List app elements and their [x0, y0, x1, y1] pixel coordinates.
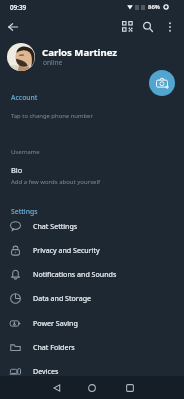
button[interactable]: Data and Storage	[0, 286, 184, 310]
button[interactable]: QR code	[117, 16, 138, 37]
button[interactable]: Carlos Martinez	[0, 40, 184, 74]
button[interactable]: Home	[83, 379, 101, 397]
staticText: 86%	[148, 3, 160, 11]
staticText: Settings	[11, 207, 38, 216]
button[interactable]: Back	[48, 379, 66, 397]
staticText: Username	[11, 148, 40, 156]
staticText: Power Saving	[33, 318, 78, 328]
staticText: Privacy and Security	[33, 245, 100, 255]
staticText: 09:39	[10, 3, 27, 12]
button[interactable]: Chat Settings	[0, 214, 184, 238]
staticText: Devices	[33, 366, 59, 376]
button[interactable]: Recent apps	[121, 379, 139, 397]
staticText: Tap to change phone number	[11, 112, 93, 120]
button[interactable]: Bio	[0, 165, 184, 189]
button[interactable]: Chat Folders	[0, 335, 184, 359]
staticText: Carlos Martinez	[42, 46, 118, 59]
staticText: Add a few words about yourself	[11, 178, 100, 186]
button[interactable]: Set profile photo	[149, 70, 175, 96]
button[interactable]: Back	[2, 16, 23, 37]
button[interactable]: Privacy and Security	[0, 238, 184, 262]
staticText: Chat Settings	[33, 221, 78, 231]
button[interactable]: Tap to change phone number	[0, 106, 184, 126]
button[interactable]: Power Saving	[0, 311, 184, 335]
staticText: Data and Storage	[33, 293, 91, 303]
staticText: online	[43, 58, 63, 67]
staticText: Notifications and Sounds	[33, 269, 117, 279]
staticText: Chat Folders	[33, 342, 75, 352]
staticText: Account	[11, 93, 38, 102]
staticText: Bio	[11, 165, 23, 175]
button[interactable]: Devices	[0, 359, 184, 383]
button[interactable]: More options	[159, 16, 180, 37]
button[interactable]: Search	[137, 16, 158, 37]
button[interactable]: Notifications and Sounds	[0, 262, 184, 286]
